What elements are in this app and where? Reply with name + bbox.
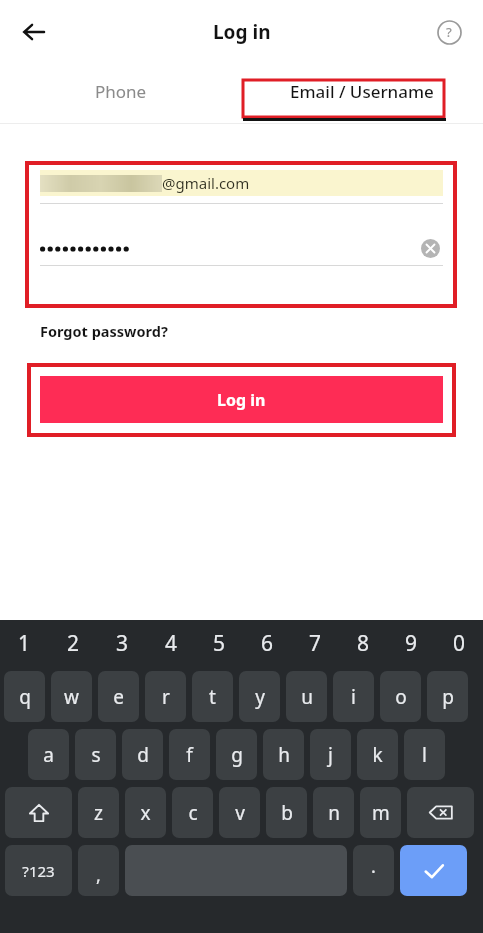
staticText: b	[281, 800, 293, 826]
button[interactable]: 8	[339, 620, 387, 666]
button[interactable]: m	[360, 787, 401, 838]
button[interactable]: 4	[147, 620, 195, 666]
staticText: r	[162, 684, 170, 710]
button[interactable]: e	[98, 671, 139, 722]
staticText: q	[19, 684, 31, 710]
button[interactable]: Phone	[0, 64, 241, 118]
staticText: o	[395, 684, 407, 710]
staticText: h	[278, 742, 290, 768]
button[interactable]: h	[263, 729, 304, 780]
button[interactable]: x	[125, 787, 166, 838]
staticText: m	[372, 800, 390, 826]
button[interactable]: 3	[98, 620, 147, 666]
staticText: n	[328, 800, 340, 826]
staticText: 0	[453, 629, 466, 658]
staticText: 5	[213, 629, 226, 658]
staticText: 9	[405, 629, 418, 658]
staticText: Forgot password?	[40, 321, 168, 341]
button[interactable]: 1	[0, 620, 49, 666]
button[interactable]: Clear password	[40, 231, 443, 265]
button[interactable]: g	[216, 729, 257, 780]
button[interactable]: r	[145, 671, 186, 722]
button[interactable]: u	[286, 671, 327, 722]
button[interactable]: q	[4, 671, 45, 722]
button[interactable]: d	[122, 729, 163, 780]
staticText: 1	[18, 629, 31, 658]
staticText: ?123	[22, 861, 55, 881]
button[interactable]: 9	[387, 620, 435, 666]
button[interactable]: a	[28, 729, 69, 780]
button[interactable]: Shift	[5, 787, 72, 838]
staticText: j	[328, 742, 333, 768]
button[interactable]: Help	[429, 12, 469, 52]
button[interactable]: 5	[195, 620, 243, 666]
button[interactable]: 6	[243, 620, 291, 666]
button[interactable]: ?123	[5, 845, 72, 896]
staticText: 4	[165, 629, 178, 658]
button[interactable]: b	[266, 787, 307, 838]
button[interactable]: Email / Username	[241, 64, 483, 118]
staticText: s	[91, 742, 101, 768]
button[interactable]: Back	[12, 10, 56, 54]
staticText: Phone	[95, 80, 147, 103]
staticText: i	[351, 684, 356, 710]
staticText: g	[231, 742, 243, 768]
staticText: d	[137, 742, 149, 768]
staticText: Email / Username	[290, 80, 434, 103]
staticText: ?	[446, 23, 452, 41]
staticText: p	[442, 684, 454, 710]
staticText: z	[94, 800, 103, 826]
button[interactable]: p	[427, 671, 468, 722]
staticText: 3	[116, 629, 129, 658]
staticText: e	[113, 684, 124, 710]
button[interactable]: l	[404, 729, 445, 780]
button[interactable]: @gmail.com	[40, 163, 443, 203]
staticText: .	[371, 854, 376, 879]
button[interactable]: Log in	[40, 376, 443, 423]
button[interactable]: 7	[291, 620, 339, 666]
button[interactable]: n	[313, 787, 354, 838]
staticText: l	[422, 742, 427, 768]
staticText: 2	[67, 629, 80, 658]
staticText: f	[186, 742, 193, 768]
button[interactable]: c	[172, 787, 213, 838]
staticText: @gmail.com	[162, 173, 250, 193]
staticText: u	[301, 684, 313, 710]
staticText: t	[209, 684, 216, 710]
button[interactable]: 2	[49, 620, 98, 666]
button[interactable]: Forgot password?	[40, 321, 168, 341]
button[interactable]: o	[380, 671, 421, 722]
staticText: c	[188, 800, 198, 826]
button[interactable]: t	[192, 671, 233, 722]
staticText: v	[235, 800, 245, 826]
button[interactable]: Backspace	[407, 787, 474, 838]
staticText: 8	[357, 629, 370, 658]
staticText: ,	[96, 863, 101, 888]
staticText: Log in	[217, 389, 266, 411]
button[interactable]: 0	[435, 620, 483, 666]
staticText: Log in	[213, 19, 271, 45]
button[interactable]: ,	[78, 845, 119, 896]
staticText: x	[140, 800, 151, 826]
button[interactable]: f	[169, 729, 210, 780]
button[interactable]: w	[51, 671, 92, 722]
button[interactable]: s	[75, 729, 116, 780]
staticText: w	[64, 684, 79, 710]
staticText: k	[372, 742, 383, 768]
button[interactable]: z	[78, 787, 119, 838]
staticText: y	[255, 684, 265, 710]
button[interactable]: v	[219, 787, 260, 838]
button[interactable]: j	[310, 729, 351, 780]
staticText: 6	[261, 629, 274, 658]
button[interactable]: k	[357, 729, 398, 780]
button[interactable]: Clear password	[417, 235, 443, 261]
button[interactable]: i	[333, 671, 374, 722]
staticText: 7	[309, 629, 322, 658]
button[interactable]: Enter	[400, 845, 467, 896]
staticText: a	[43, 742, 54, 768]
button[interactable]: .	[353, 845, 394, 896]
button[interactable]: y	[239, 671, 280, 722]
